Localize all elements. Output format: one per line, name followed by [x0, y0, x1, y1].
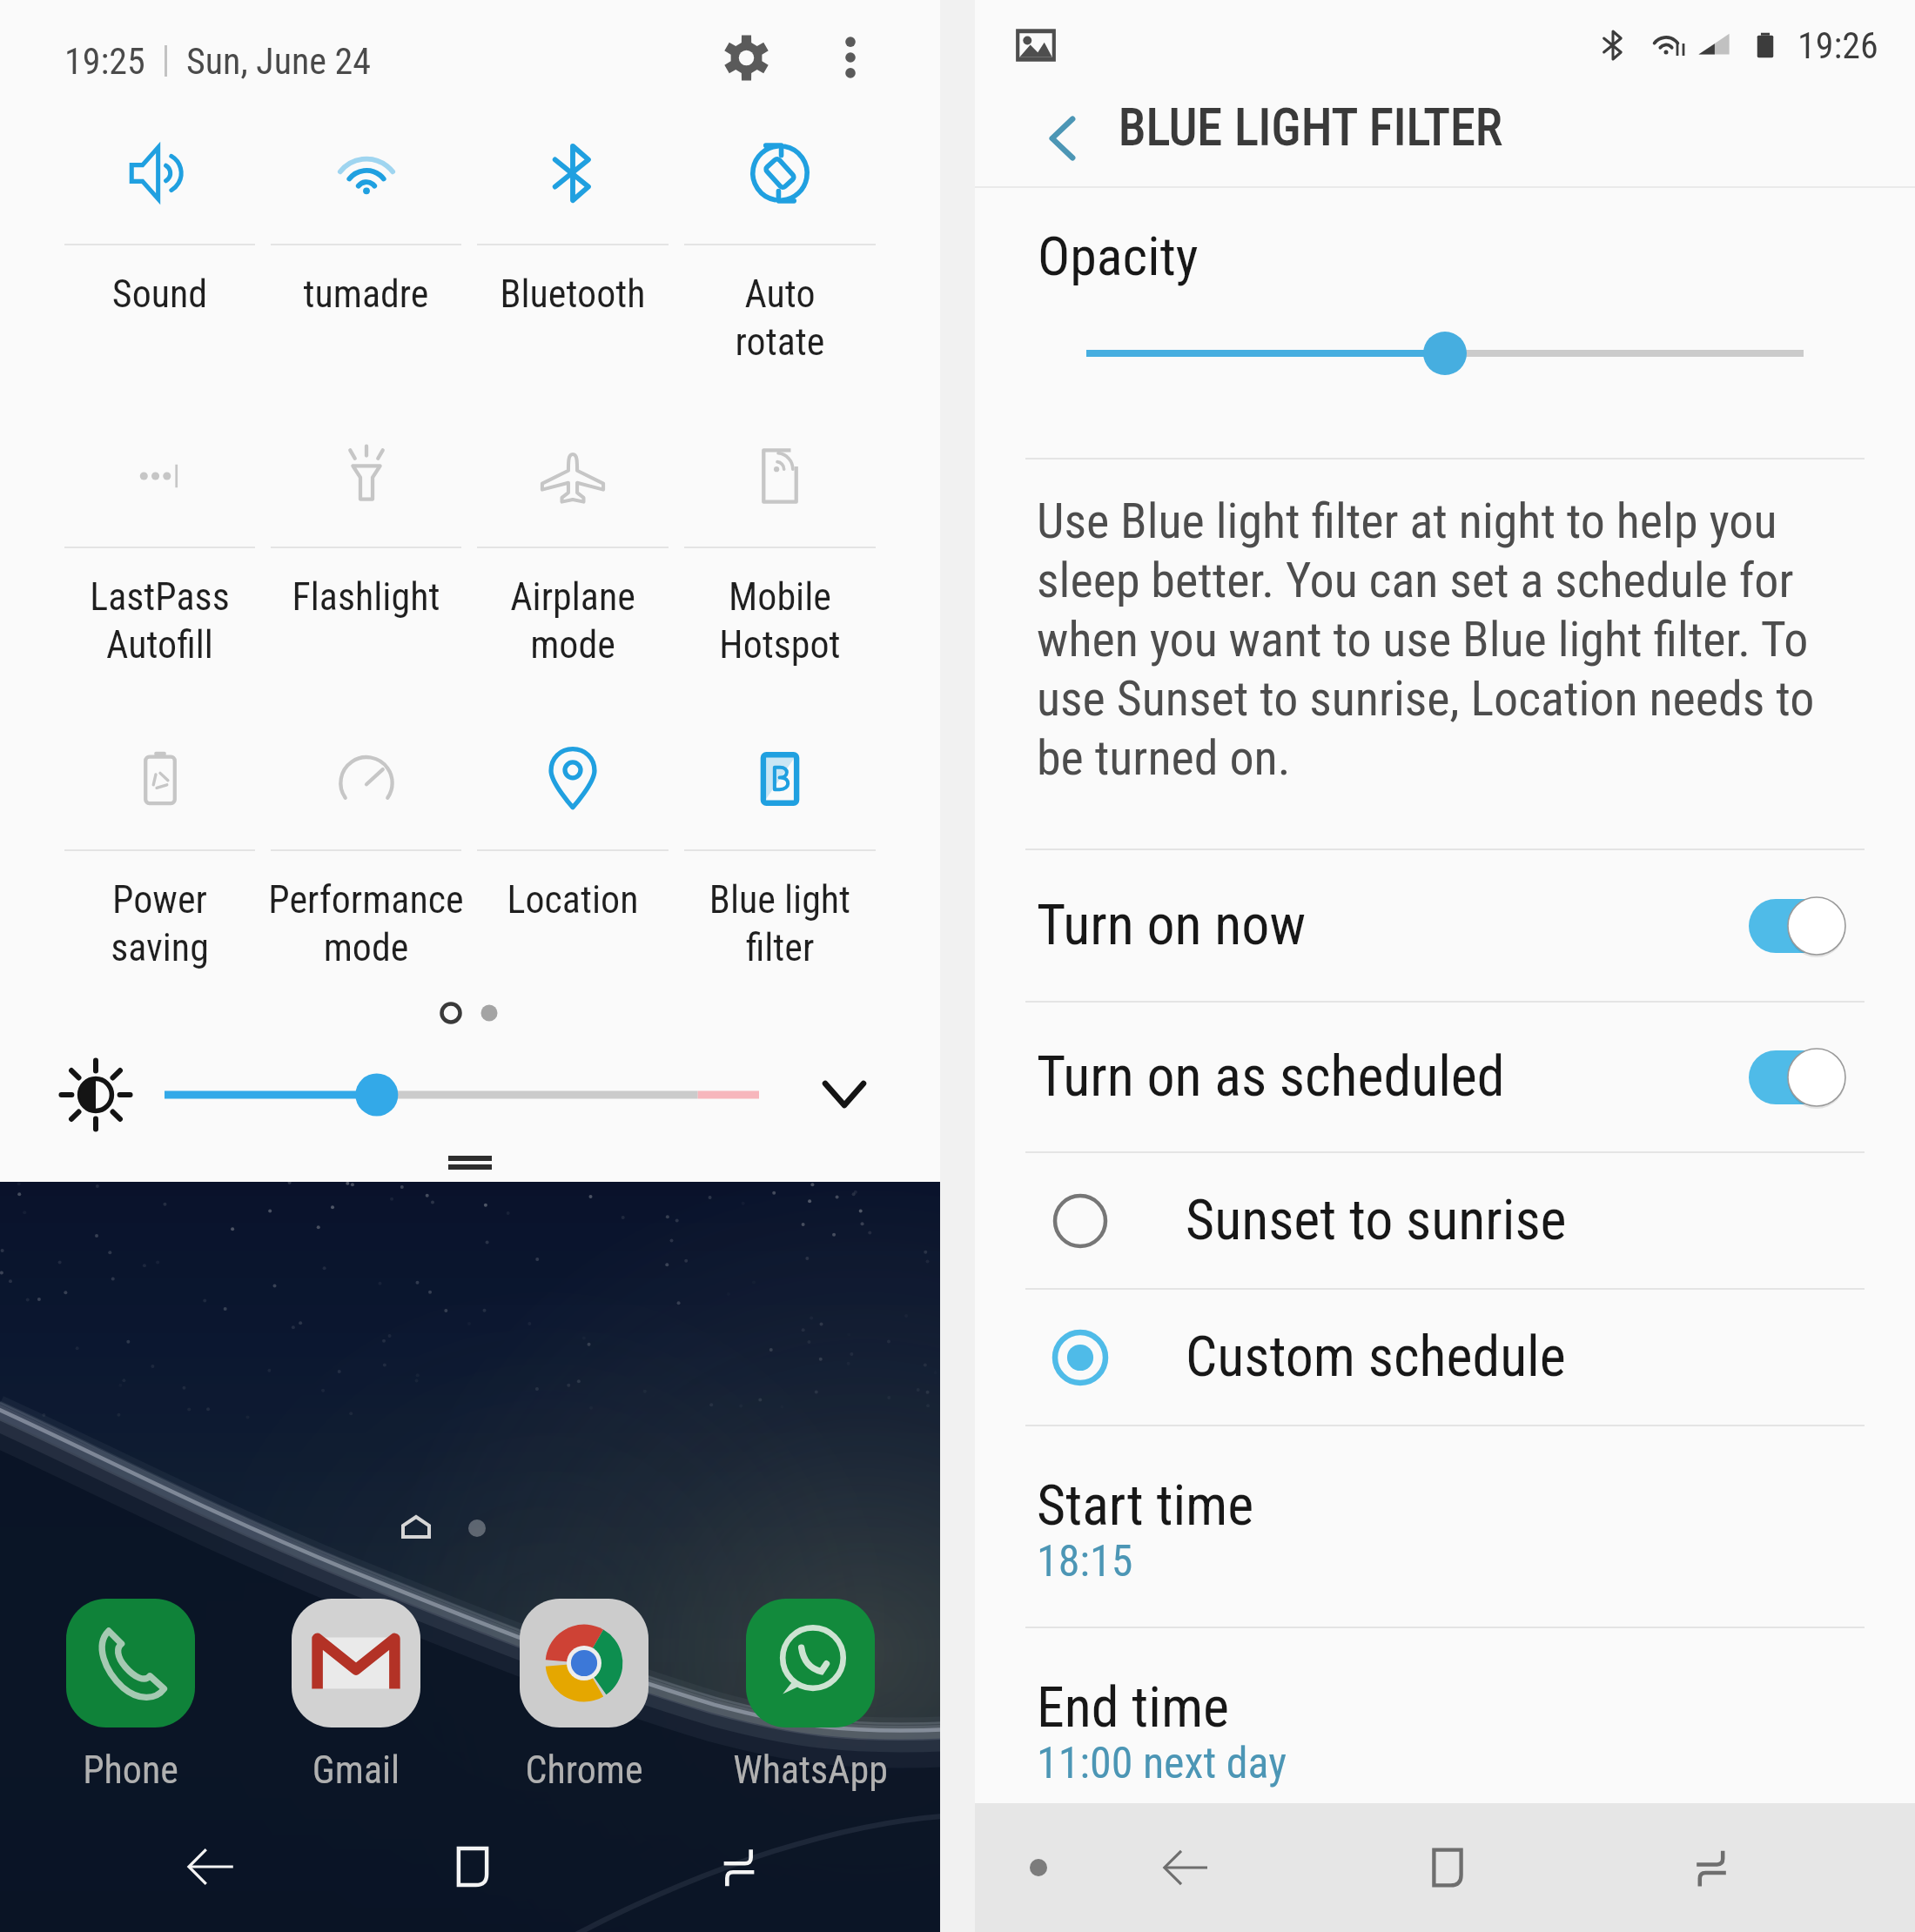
staticText: Use Blue light filter at night to help y… [1037, 493, 1858, 787]
staticText: Sunset to sunrise [1186, 1188, 1567, 1253]
staticText: BLUE LIGHT FILTER [1119, 98, 1502, 157]
staticText: Location [469, 877, 676, 922]
button[interactable]: Chrome [520, 1599, 648, 1727]
staticText: Opacity [1038, 225, 1199, 288]
button[interactable]: Airplane mode [469, 425, 676, 728]
button[interactable]: tumadre [263, 122, 469, 425]
button[interactable]: Mobile Hotspot [676, 425, 884, 728]
button[interactable] [975, 321, 1915, 386]
button[interactable]: Brightness [52, 1057, 888, 1133]
button[interactable]: Home [412, 1806, 534, 1928]
button[interactable]: Back [1011, 91, 1115, 186]
staticText: Turn on now [1037, 893, 1306, 958]
button[interactable]: Turn on as scheduled [975, 1003, 1915, 1151]
button[interactable]: Home [1395, 1803, 1500, 1932]
button[interactable]: Custom schedule [975, 1290, 1915, 1425]
staticText: Sun, June 24 [186, 40, 372, 83]
staticText: Sound [57, 272, 263, 317]
button[interactable]: Flashlight [263, 425, 469, 728]
staticText: 19:25 [64, 40, 145, 83]
button[interactable]: Location [469, 728, 676, 1030]
button[interactable]: Bluetooth [469, 122, 676, 425]
staticText: LastPass Autofill [57, 574, 263, 667]
button[interactable]: LastPass Autofill [57, 425, 263, 728]
button[interactable]: Blue light filter [676, 728, 884, 1030]
staticText: 18:15 [1037, 1536, 1133, 1587]
button[interactable]: End time [975, 1628, 1915, 1796]
button[interactable]: Settings [704, 16, 788, 99]
button[interactable]: WhatsApp [746, 1599, 875, 1727]
staticText: Blue light filter [676, 877, 884, 970]
button[interactable]: Recents [1659, 1803, 1764, 1932]
staticText: Bluetooth [469, 272, 676, 317]
button[interactable]: Sound [57, 122, 263, 425]
staticText: Chrome [454, 1748, 715, 1793]
button[interactable]: Sunset to sunrise [975, 1153, 1915, 1288]
staticText: Gmail [225, 1748, 487, 1793]
staticText: WhatsApp [680, 1748, 941, 1793]
button[interactable]: Turn on now [975, 850, 1915, 1001]
staticText: Phone [0, 1748, 261, 1793]
button[interactable]: Back [1134, 1803, 1239, 1932]
staticText: Mobile Hotspot [676, 574, 884, 667]
button[interactable]: Start time [975, 1426, 1915, 1627]
button[interactable]: Performance mode [263, 728, 469, 1030]
staticText: Auto rotate [676, 272, 884, 365]
button[interactable]: Phone [66, 1599, 195, 1727]
button[interactable]: More options [817, 24, 884, 91]
staticText: Custom schedule [1186, 1325, 1566, 1390]
staticText: Power saving [57, 877, 263, 970]
button[interactable]: Recents [678, 1806, 800, 1928]
button[interactable]: Gmail [292, 1599, 420, 1727]
button[interactable]: Power saving [57, 728, 263, 1030]
staticText: Flashlight [263, 574, 469, 620]
staticText: 11:00 next day [1037, 1738, 1287, 1789]
staticText: Performance mode [263, 877, 469, 970]
button[interactable]: Auto rotate [676, 122, 884, 425]
staticText: 19:26 [1797, 24, 1878, 67]
button[interactable]: Back [151, 1806, 272, 1928]
staticText: tumadre [263, 272, 469, 317]
staticText: End time [1037, 1675, 1230, 1741]
staticText: Start time [1037, 1473, 1254, 1539]
staticText: Airplane mode [469, 574, 676, 667]
staticText: Turn on as scheduled [1037, 1044, 1505, 1110]
